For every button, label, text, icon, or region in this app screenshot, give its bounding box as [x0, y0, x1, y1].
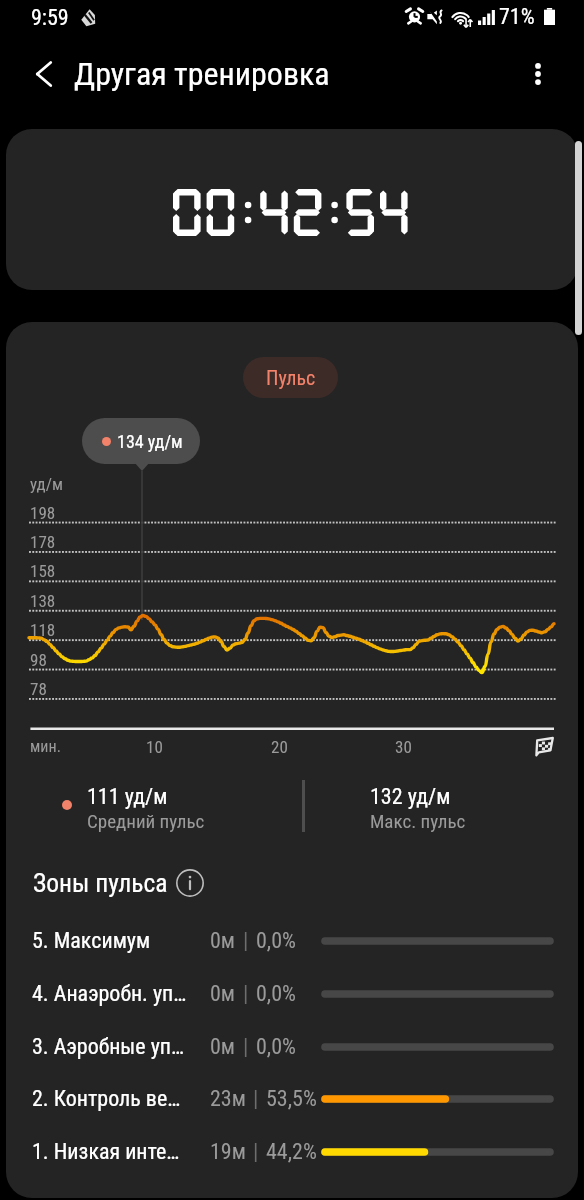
staticText: Макс. пульс [370, 810, 466, 832]
staticText: 0м [210, 981, 236, 1007]
staticText: 132 уд/м [370, 784, 451, 810]
staticText: 138 [30, 591, 56, 611]
staticText: Средний пульс [87, 810, 205, 832]
staticText: 3. Аэробные уп… [32, 1034, 200, 1060]
staticText: 178 [30, 532, 56, 552]
staticText: 158 [30, 561, 56, 581]
staticText: 30 [395, 737, 412, 757]
staticText: мин. [30, 737, 61, 756]
staticText: Пульс [266, 366, 316, 389]
staticText: 53,5% [266, 1086, 317, 1112]
staticText: 0,0% [256, 981, 296, 1007]
staticText: 0,0% [256, 928, 296, 954]
staticText: уд/м [30, 474, 64, 494]
staticText: 118 [30, 620, 56, 640]
staticText: | [253, 1139, 259, 1165]
button[interactable]: Пульс [243, 357, 338, 398]
staticText: | [243, 1034, 249, 1060]
staticText: 2. Контроль ве… [32, 1086, 200, 1112]
button[interactable]: Info [173, 866, 206, 899]
button[interactable]: Back [20, 50, 68, 98]
staticText: 134 уд/м [117, 431, 183, 452]
button[interactable]: Heart rate marker [82, 418, 200, 464]
button[interactable] [0, 1021, 584, 1073]
button[interactable] [0, 915, 584, 967]
staticText: 4. Анаэробн. уп… [32, 981, 200, 1007]
staticText: | [253, 1086, 259, 1112]
staticText: 23м [210, 1086, 246, 1112]
staticText: 5. Максимум [32, 928, 200, 954]
staticText: Зоны пульса [33, 868, 168, 898]
button[interactable] [0, 1073, 584, 1125]
staticText: 19м [210, 1139, 246, 1165]
staticText: 20 [271, 737, 288, 757]
staticText: 98 [30, 650, 47, 670]
staticText: 111 уд/м [87, 784, 168, 810]
button[interactable]: More options [514, 50, 562, 98]
staticText: | [243, 928, 249, 954]
staticText: 9:59 [31, 5, 69, 31]
staticText: 0м [210, 1034, 236, 1060]
staticText: 198 [30, 503, 56, 523]
button[interactable] [0, 968, 584, 1020]
staticText: 78 [30, 679, 47, 699]
button[interactable] [0, 1126, 584, 1178]
staticText: 10 [146, 737, 163, 757]
staticText: Другая тренировка [74, 55, 330, 93]
staticText: 0,0% [256, 1034, 296, 1060]
staticText: | [243, 981, 249, 1007]
staticText: 0м [210, 928, 236, 954]
staticText: 44,2% [266, 1139, 317, 1165]
staticText: 1. Низкая инте… [32, 1139, 200, 1165]
staticText: 71% [499, 4, 535, 30]
